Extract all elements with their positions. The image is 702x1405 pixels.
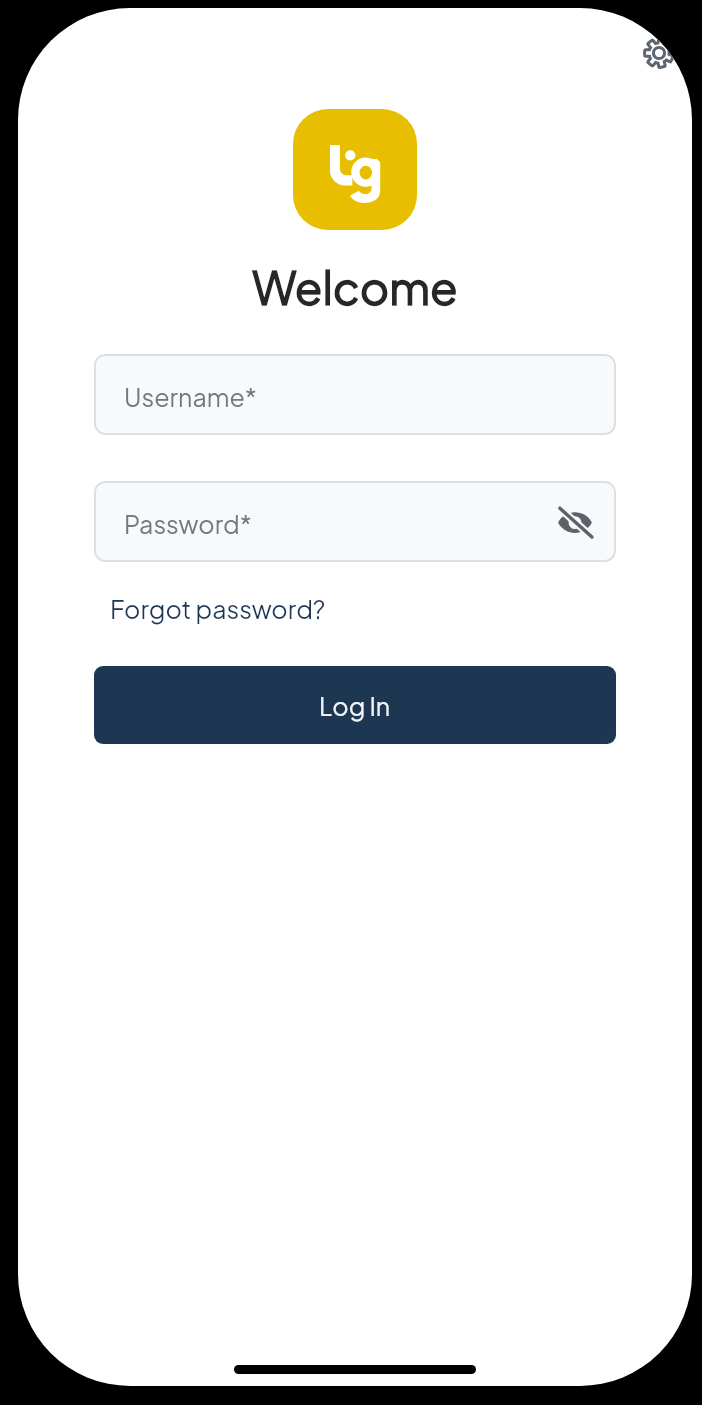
staticText: Welcome bbox=[252, 258, 458, 315]
button[interactable]: Settings bbox=[633, 27, 685, 79]
staticText: Password* bbox=[124, 508, 252, 539]
button[interactable]: Forgot password? bbox=[103, 586, 333, 631]
staticText: Forgot password? bbox=[110, 593, 326, 624]
staticText: Username* bbox=[124, 381, 257, 412]
button[interactable]: Log In bbox=[94, 666, 616, 744]
button[interactable]: Password* bbox=[94, 481, 616, 562]
button[interactable]: Username* bbox=[94, 354, 616, 435]
staticText: Log In bbox=[319, 690, 391, 721]
button[interactable]: Show password bbox=[553, 500, 597, 544]
